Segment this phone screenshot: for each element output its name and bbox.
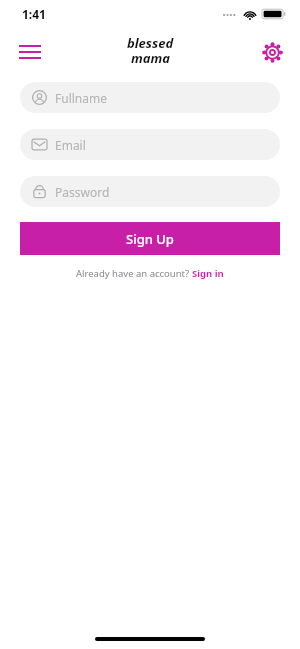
button[interactable]: Email bbox=[20, 129, 280, 160]
staticText: mama bbox=[131, 49, 170, 67]
staticText: blessed bbox=[127, 34, 174, 52]
button[interactable]: Settings bbox=[254, 34, 290, 70]
staticText: 1:41 bbox=[22, 6, 46, 22]
button[interactable]: Fullname bbox=[20, 82, 280, 113]
button[interactable]: Menu bbox=[12, 34, 48, 70]
button[interactable]: Password bbox=[20, 176, 280, 207]
staticText: Sign Up bbox=[126, 230, 174, 248]
staticText: Already have an account? bbox=[76, 267, 192, 280]
button[interactable]: Sign Up bbox=[20, 222, 280, 255]
staticText: Sign in bbox=[192, 267, 224, 280]
staticText: Password bbox=[55, 184, 110, 200]
staticText: Fullname bbox=[55, 90, 107, 106]
button[interactable]: Sign in bbox=[192, 267, 224, 280]
staticText: Email bbox=[55, 137, 86, 153]
